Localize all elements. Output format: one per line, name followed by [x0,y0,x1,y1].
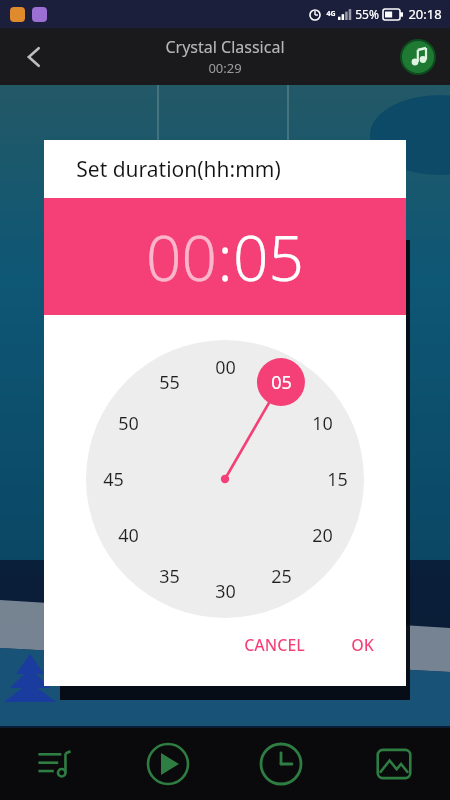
staticText: : [217,215,233,299]
staticText: 05 [271,370,292,395]
button[interactable]: OK [341,626,384,664]
staticText: 15 [327,467,348,492]
staticText: Crystal Classical [165,36,285,58]
staticText: OK [351,634,374,656]
staticText: 25 [271,564,292,589]
staticText: 45 [103,467,124,492]
staticText: 05 [233,215,304,299]
button[interactable]: Music library [398,37,438,77]
staticText: 35 [159,564,180,589]
staticText: CANCEL [244,634,305,656]
staticText: 00 [146,215,217,299]
staticText: 20:18 [408,5,442,23]
button[interactable]: Playlist [0,728,112,800]
button[interactable]: Back [14,37,54,77]
staticText: 20 [312,523,333,548]
staticText: 50 [118,411,139,436]
staticText: 00:29 [208,59,242,77]
staticText: 4G [326,9,336,19]
staticText: 55 [159,370,180,395]
staticText: 30 [215,579,236,604]
staticText: 40 [118,523,139,548]
staticText: Set duration(hh:mm) [76,155,281,184]
button[interactable]: Play [112,728,224,800]
button[interactable]: CANCEL [234,626,315,664]
staticText: 10 [312,411,333,436]
staticText: 00 [215,355,236,380]
button[interactable]: Timer [224,728,337,800]
button[interactable]: Images [337,728,450,800]
staticText: 55% [355,6,379,22]
